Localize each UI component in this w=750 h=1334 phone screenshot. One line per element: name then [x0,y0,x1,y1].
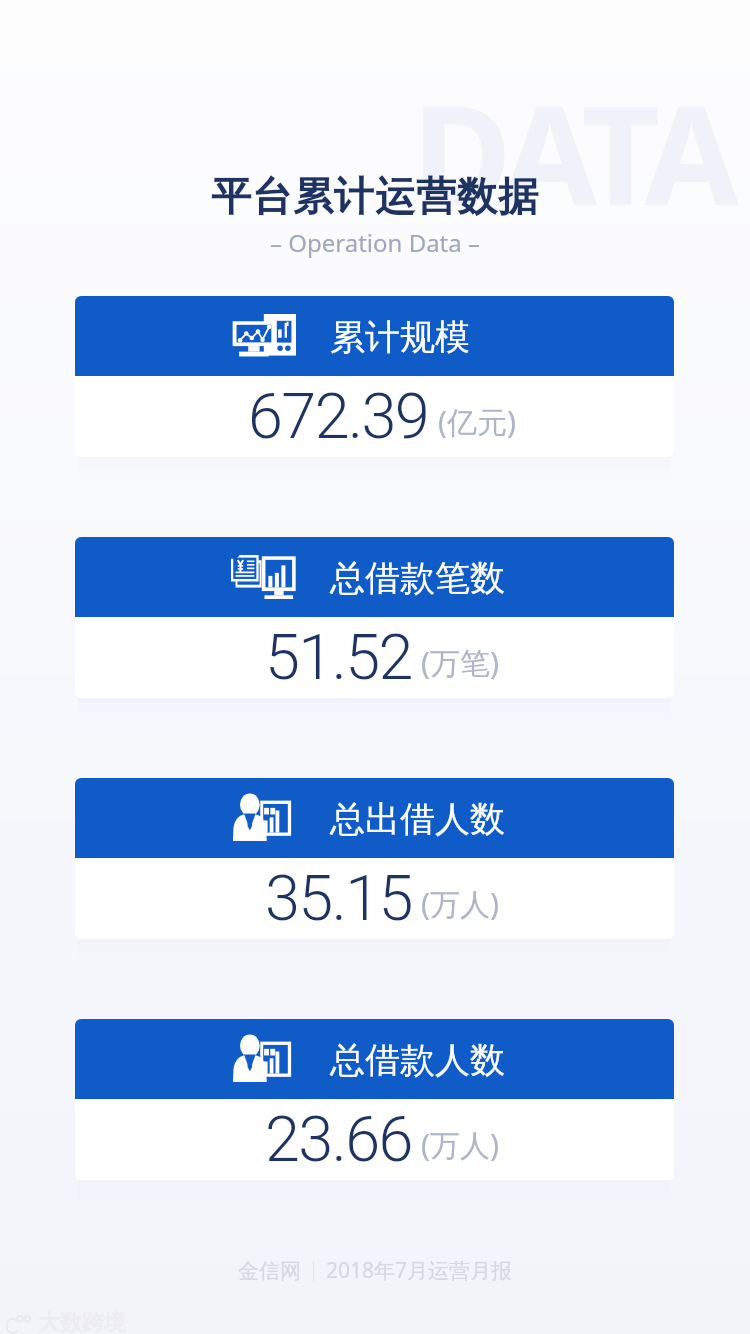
staticText: (万人) [421,1124,499,1165]
staticText: (亿元) [438,401,516,442]
staticText: 23.66 [265,1103,412,1177]
staticText: 总借款笔数 [330,556,505,600]
staticText: 总借款人数 [330,1038,505,1082]
button[interactable]: 总借款笔数 [75,537,674,698]
staticText: 大数跨境 [38,1309,126,1334]
staticText: DATA [412,60,733,245]
staticText: 2018年7月运营月报 [326,1256,513,1285]
staticText: – Operation Data – [0,226,750,259]
staticText: (万笔) [421,642,499,683]
staticText: 累计规模 [330,315,470,359]
button[interactable]: 总借款人数 [75,1019,674,1180]
staticText: (万人) [421,883,499,924]
staticText: 51.52 [265,621,412,695]
button[interactable]: 总出借人数 [75,778,674,939]
staticText: 35.15 [265,862,412,936]
staticText: 金信网 [238,1258,301,1284]
staticText: 总出借人数 [330,797,505,841]
button[interactable]: 累计规模 [75,296,674,457]
staticText: 平台累计运营数据 [0,171,750,221]
staticText: 672.39 [248,380,429,454]
